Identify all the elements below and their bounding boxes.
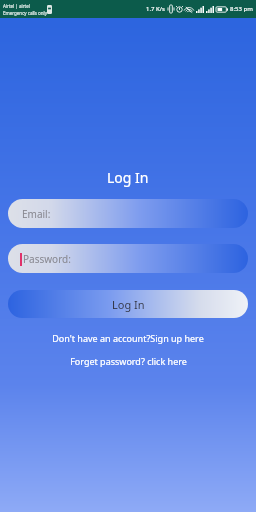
staticText: Emergency calls only xyxy=(3,10,48,16)
button[interactable]: Don't have an account?Sign up here xyxy=(0,332,256,344)
button[interactable]: Password: xyxy=(8,244,248,273)
staticText: 8:53 pm xyxy=(230,5,253,13)
button[interactable]: Log In xyxy=(8,290,248,318)
staticText: Airtel | airtel xyxy=(3,3,30,9)
staticText: Forget password? click here xyxy=(70,355,187,367)
button[interactable]: Forget password? click here xyxy=(0,355,256,367)
staticText: Password: xyxy=(23,252,71,266)
button[interactable]: Email: xyxy=(8,199,248,228)
staticText: 1.7 K/s xyxy=(146,5,165,13)
staticText: Log In xyxy=(107,168,149,187)
staticText: Log In xyxy=(112,297,145,312)
staticText: Email: xyxy=(22,207,51,221)
staticText: Don't have an account?Sign up here xyxy=(52,332,204,344)
